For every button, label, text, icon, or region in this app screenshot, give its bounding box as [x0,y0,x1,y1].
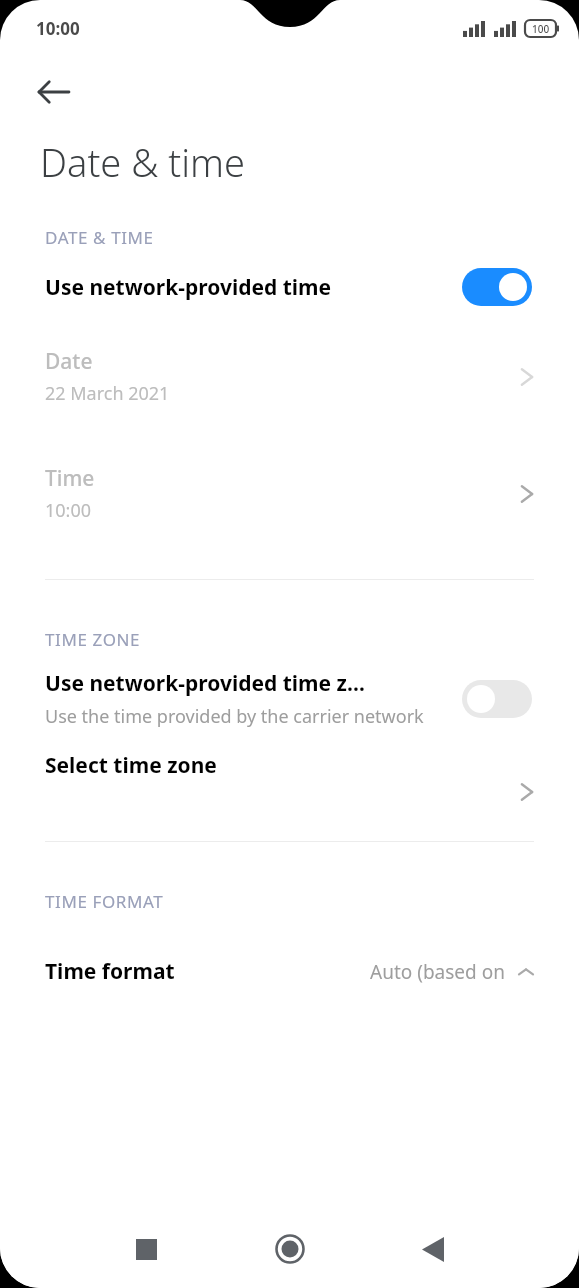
button[interactable]: Home [264,1223,316,1275]
button[interactable]: Time format [0,913,579,986]
staticText: 10:00 [45,498,92,523]
staticText: TIME FORMAT [45,890,164,913]
staticText: Use network-provided time [45,273,462,302]
button[interactable]: Recents [120,1223,172,1275]
button[interactable]: Back [407,1223,459,1275]
staticText: Time [45,464,95,493]
staticText: Auto (based on [370,959,505,985]
button[interactable]: Date [0,325,579,406]
staticText: Use the time provided by the carrier net… [45,704,424,729]
staticText: 22 March 2021 [45,381,170,406]
button[interactable]: Use network-provided time z… [0,651,579,729]
button[interactable]: Time [0,406,579,523]
button[interactable]: Use network-provided time [0,249,579,325]
staticText: 10:00 [36,17,80,40]
button[interactable]: Toggle on [462,268,532,306]
button[interactable]: Toggle off [462,680,532,718]
staticText: TIME ZONE [45,628,141,651]
button[interactable]: Back [28,66,80,118]
staticText: Date [45,347,93,376]
staticText: Use network-provided time z… [45,669,365,698]
button[interactable]: Select time zone [0,729,579,815]
staticText: DATE & TIME [45,226,154,249]
staticText: Time format [45,957,370,986]
staticText: 100 [532,22,550,36]
staticText: Date & time [40,136,245,188]
staticText: Select time zone [45,751,217,780]
